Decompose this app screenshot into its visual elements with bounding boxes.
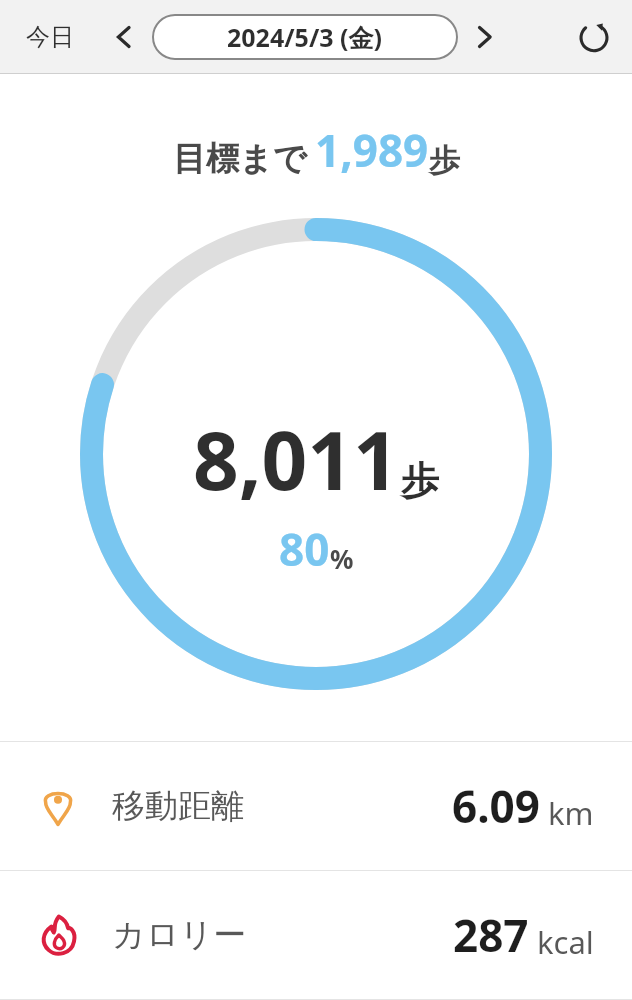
staticText: 6.09 — [452, 776, 540, 836]
staticText: 歩 — [401, 457, 439, 505]
button[interactable]: Refresh — [570, 13, 618, 61]
staticText: 1,989 — [315, 120, 429, 180]
staticText: kcal — [537, 921, 594, 963]
button[interactable]: カロリー — [0, 871, 632, 999]
staticText: 8,011 — [193, 404, 399, 513]
staticText: 2024/5/3 (金) — [227, 20, 383, 54]
staticText: 287 — [453, 905, 529, 965]
staticText: 目標まで — [173, 138, 307, 180]
staticText: km — [548, 792, 594, 834]
button[interactable]: 今日 — [14, 14, 86, 60]
staticText: 移動距離 — [112, 785, 244, 827]
button[interactable]: Previous day — [104, 17, 144, 57]
staticText: 歩 — [429, 141, 460, 180]
button[interactable]: 2024/5/3 (金) — [152, 14, 458, 60]
button[interactable]: Next day — [464, 17, 504, 57]
staticText: 80 — [279, 519, 330, 579]
button[interactable]: 移動距離 — [0, 742, 632, 870]
staticText: カロリー — [112, 914, 247, 956]
staticText: 今日 — [26, 22, 74, 52]
staticText: % — [330, 541, 354, 576]
